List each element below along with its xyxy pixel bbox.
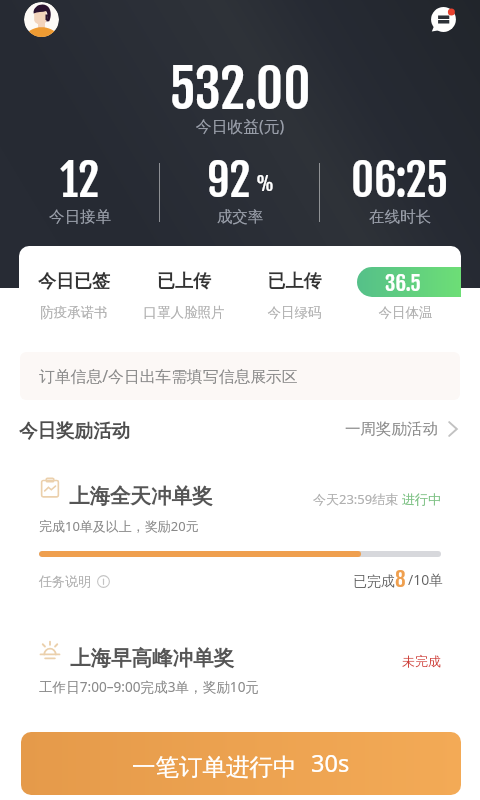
button[interactable]: Profile <box>24 2 59 37</box>
staticText: 一周奖励活动 <box>345 419 438 439</box>
button[interactable]: 36.5 <box>350 246 461 338</box>
staticText: 一笔订单进行中 <box>132 752 297 782</box>
staticText: 今日绿码 <box>239 304 350 321</box>
button[interactable]: 任务说明 <box>39 569 110 593</box>
staticText: 今日奖励活动 <box>19 419 130 442</box>
button[interactable]: 92 <box>160 152 320 227</box>
staticText: 8 <box>395 566 406 593</box>
button[interactable]: 今日已签 <box>19 246 129 338</box>
staticText: 今天23:59结束 <box>313 490 399 508</box>
button[interactable]: 一周奖励活动 <box>345 414 458 444</box>
staticText: 已上传 <box>129 270 239 293</box>
staticText: 防疫承诺书 <box>19 304 129 321</box>
staticText: 已完成 <box>353 573 395 591</box>
staticText: 已上传 <box>239 270 350 293</box>
staticText: 进行中 <box>402 491 441 507</box>
staticText: /10单 <box>408 570 444 589</box>
staticText: 今日体温 <box>350 304 461 321</box>
staticText: 上海早高峰冲单奖 <box>70 645 234 671</box>
staticText: 92 <box>207 152 251 208</box>
button[interactable]: 一笔订单进行中 <box>21 732 461 795</box>
staticText: 06:25 <box>351 152 449 208</box>
staticText: 36.5 <box>385 270 421 296</box>
button[interactable]: 订单信息/今日出车需填写信息展示区 <box>20 352 460 400</box>
staticText: 订单信息/今日出车需填写信息展示区 <box>39 365 298 387</box>
staticText: 未完成 <box>402 653 441 669</box>
staticText: 12 <box>60 152 100 208</box>
button[interactable]: 已上传 <box>239 246 350 338</box>
staticText: 完成10单及以上，奖励20元 <box>39 517 199 535</box>
staticText: 532.00 <box>0 56 480 122</box>
staticText: 任务说明 <box>39 573 91 589</box>
staticText: 上海全天冲单奖 <box>69 483 213 509</box>
staticText: 在线时长 <box>320 207 480 227</box>
button[interactable]: 已上传 <box>129 246 239 338</box>
button[interactable]: 12 <box>0 152 160 227</box>
staticText: 工作日7:00–9:00完成3单，奖励10元 <box>39 677 260 696</box>
staticText: 今日已签 <box>19 270 129 293</box>
button[interactable]: Messages <box>426 2 461 37</box>
staticText: % <box>256 171 274 196</box>
staticText: 30s <box>311 747 350 779</box>
staticText: 成交率 <box>160 207 320 227</box>
button[interactable]: 06:25 <box>320 152 480 227</box>
staticText: 今日接单 <box>0 207 160 227</box>
staticText: 口罩人脸照片 <box>129 304 239 321</box>
staticText: 今日收益(元) <box>0 115 480 137</box>
